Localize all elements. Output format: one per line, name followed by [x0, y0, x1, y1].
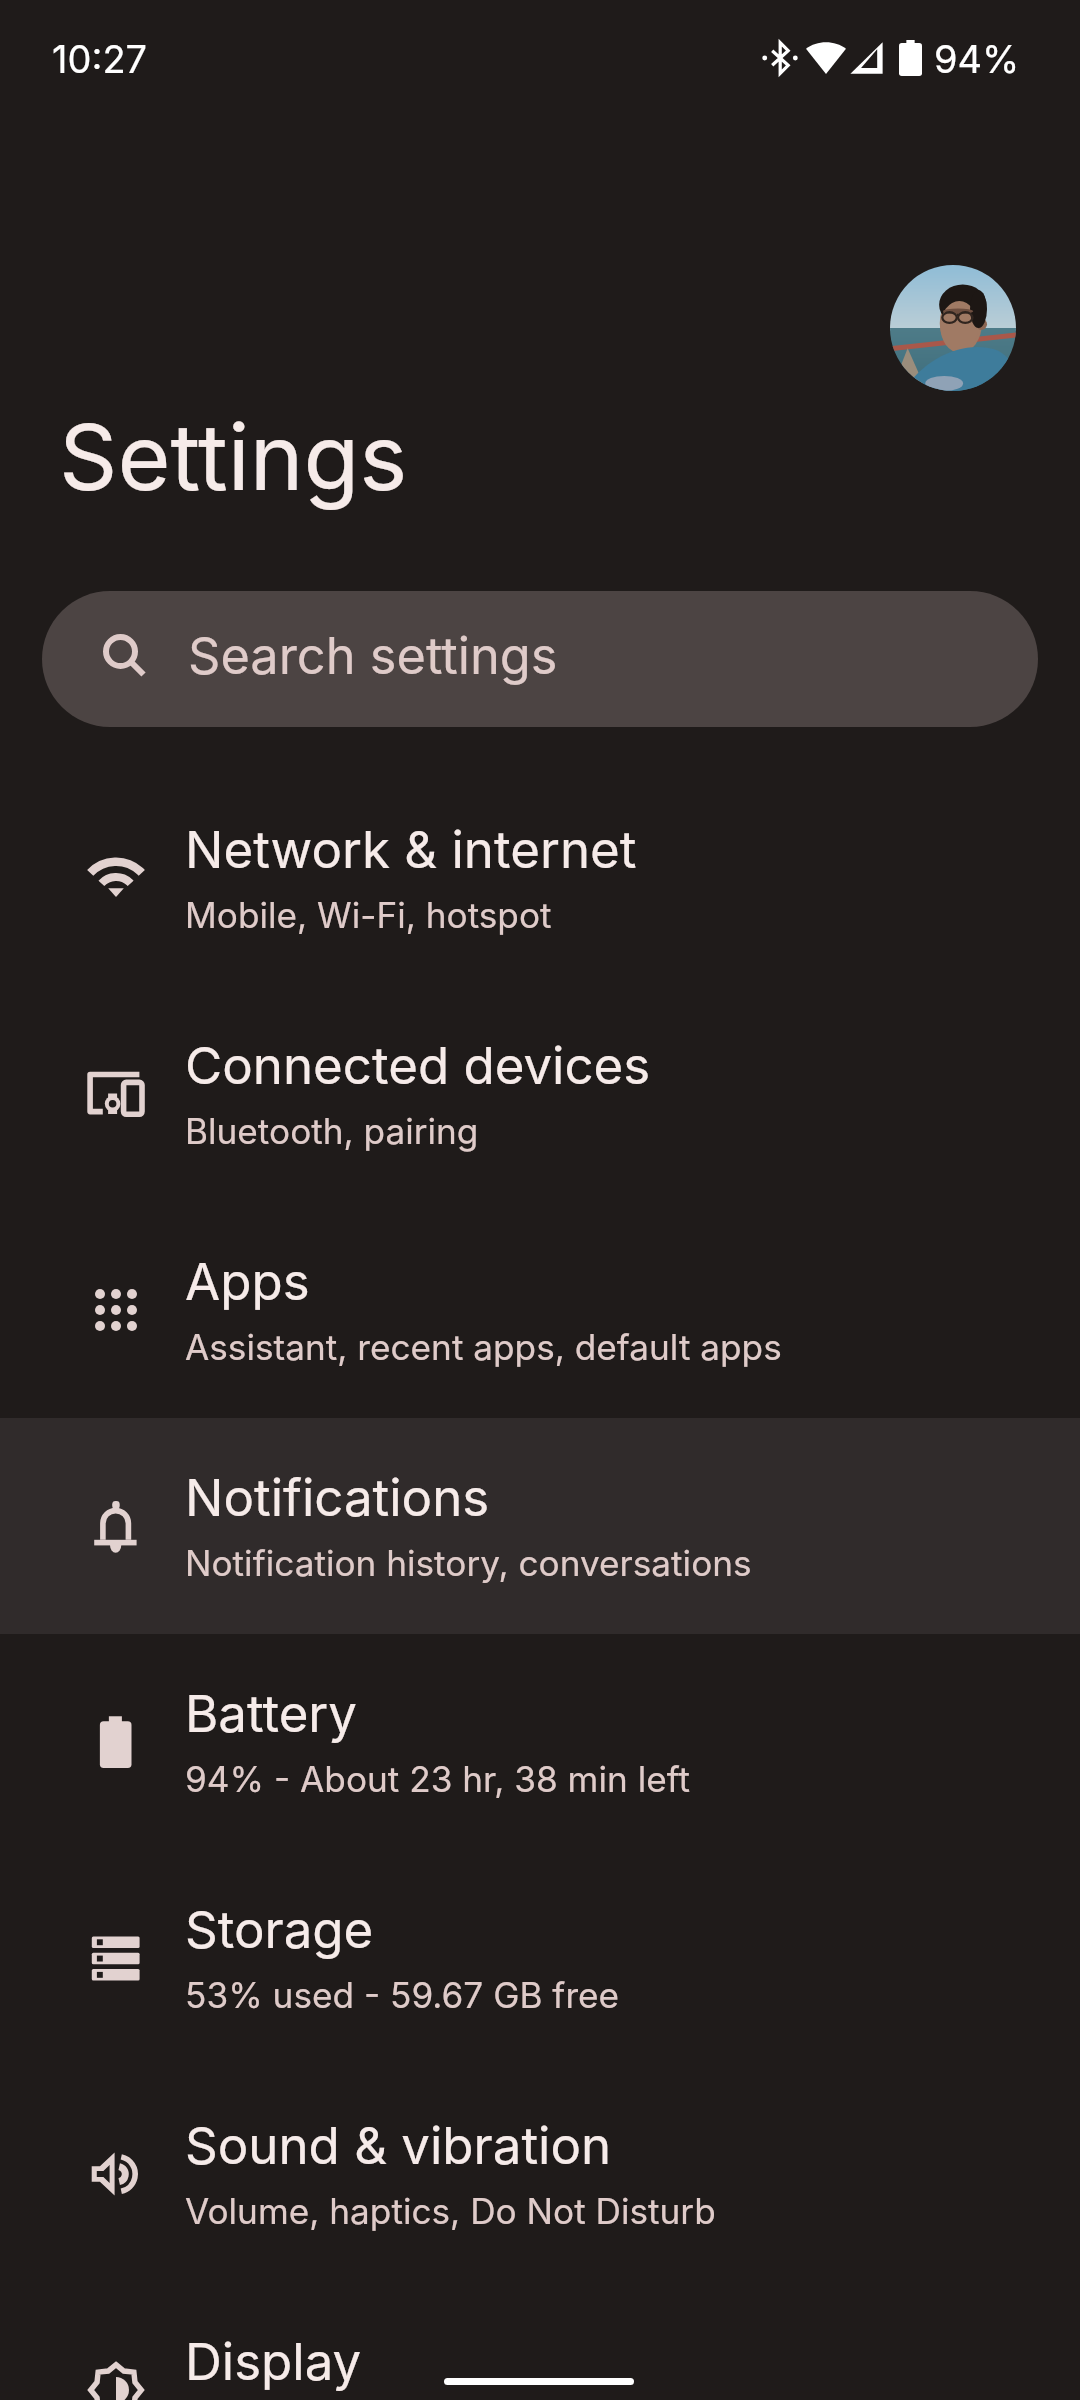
- button[interactable]: Battery: [0, 1634, 1080, 1850]
- staticText: 94%: [934, 36, 1020, 82]
- staticText: Battery: [185, 1683, 358, 1745]
- other: Battery: [85, 1711, 147, 1773]
- staticText: Bluetooth, pairing: [185, 1110, 479, 1153]
- button[interactable]: Display: [0, 2282, 1080, 2400]
- other: Sound: [85, 2143, 147, 2205]
- button[interactable]: Network: [0, 770, 1080, 986]
- staticText: 10:27: [52, 36, 148, 82]
- staticText: Notification history, conversations: [185, 1542, 752, 1585]
- staticText: Connected devices: [185, 1035, 651, 1097]
- staticText: Settings: [59, 402, 408, 512]
- staticText: Network & internet: [185, 819, 637, 881]
- other: Display: [85, 2359, 147, 2400]
- button[interactable]: Devices: [0, 986, 1080, 1202]
- button[interactable]: Account: [890, 265, 1016, 391]
- staticText: Storage: [185, 1899, 374, 1961]
- staticText: Volume, haptics, Do Not Disturb: [185, 2190, 716, 2233]
- staticText: Apps: [185, 1251, 310, 1313]
- button[interactable]: Notifications: [0, 1418, 1080, 1634]
- button[interactable]: Apps: [0, 1202, 1080, 1418]
- staticText: Sound & vibration: [185, 2115, 612, 2177]
- staticText: Mobile, Wi-Fi, hotspot: [185, 894, 552, 937]
- staticText: Search settings: [188, 625, 558, 686]
- staticText: 94% - About 23 hr, 38 min left: [185, 1758, 690, 1801]
- other: Network: [85, 847, 147, 909]
- other: Apps: [85, 1279, 147, 1341]
- other: Storage: [85, 1927, 147, 1989]
- staticText: 53% used - 59.67 GB free: [185, 1974, 620, 2017]
- button[interactable]: Sound: [0, 2066, 1080, 2282]
- button[interactable]: Storage: [0, 1850, 1080, 2066]
- staticText: Notifications: [185, 1467, 490, 1529]
- staticText: Display: [185, 2331, 362, 2393]
- staticText: Assistant, recent apps, default apps: [185, 1326, 782, 1369]
- other: Devices: [85, 1063, 147, 1125]
- button[interactable]: Search settings: [42, 591, 1038, 727]
- other: Notifications: [85, 1495, 147, 1557]
